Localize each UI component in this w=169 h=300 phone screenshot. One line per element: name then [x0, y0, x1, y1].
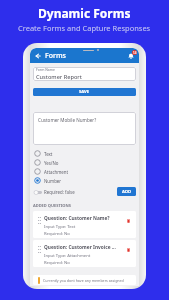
staticText: Attachment [44, 169, 69, 175]
staticText: Number [44, 178, 62, 184]
button[interactable]: Question: Customer Invoice ... [33, 240, 136, 267]
staticText: ADD [122, 189, 132, 195]
staticText: Required: No [44, 231, 70, 236]
button[interactable]: Delete [124, 217, 132, 225]
button[interactable]: Question: Customer Name? [33, 211, 136, 238]
staticText: Required: false [44, 189, 75, 195]
button[interactable]: Currently you dont have any members assi… [33, 275, 136, 285]
staticText: ADDED QUESTIONS [33, 203, 71, 208]
staticText: Currently you dont have any members assi… [43, 278, 124, 283]
button[interactable]: Back [33, 51, 43, 61]
button[interactable]: Yes/No [33, 158, 136, 167]
staticText: Input Type: Text [44, 224, 76, 230]
staticText: Create Forms and Capture Responses [18, 23, 151, 33]
staticText: Question: Customer Name? [44, 215, 110, 222]
button[interactable]: Customer Mobile Number? [33, 112, 136, 145]
button[interactable]: Required: false [33, 189, 75, 195]
button[interactable]: Number [33, 176, 136, 185]
staticText: Question: Customer Invoice ... [44, 244, 116, 251]
staticText: Dynamic Forms [38, 5, 131, 21]
staticText: Yes/No [44, 160, 59, 166]
staticText: Form Name [36, 67, 55, 72]
staticText: 14 [133, 51, 137, 55]
staticText: Required: No [44, 260, 70, 265]
button[interactable]: Notifications [125, 50, 136, 61]
staticText: Customer Mobile Number? [38, 117, 97, 123]
button[interactable]: ADD [117, 187, 136, 196]
staticText: Text [44, 151, 53, 157]
button[interactable]: Attachment [33, 167, 136, 176]
staticText: Input Type: Attachment [44, 253, 91, 259]
staticText: Forms [45, 51, 66, 61]
button[interactable]: Text [33, 149, 136, 158]
button[interactable]: Form Name [33, 67, 136, 81]
button[interactable]: SAVE [33, 88, 136, 96]
button[interactable]: Delete [124, 246, 132, 254]
staticText: Customer Report [36, 73, 82, 81]
staticText: SAVE [79, 89, 90, 95]
